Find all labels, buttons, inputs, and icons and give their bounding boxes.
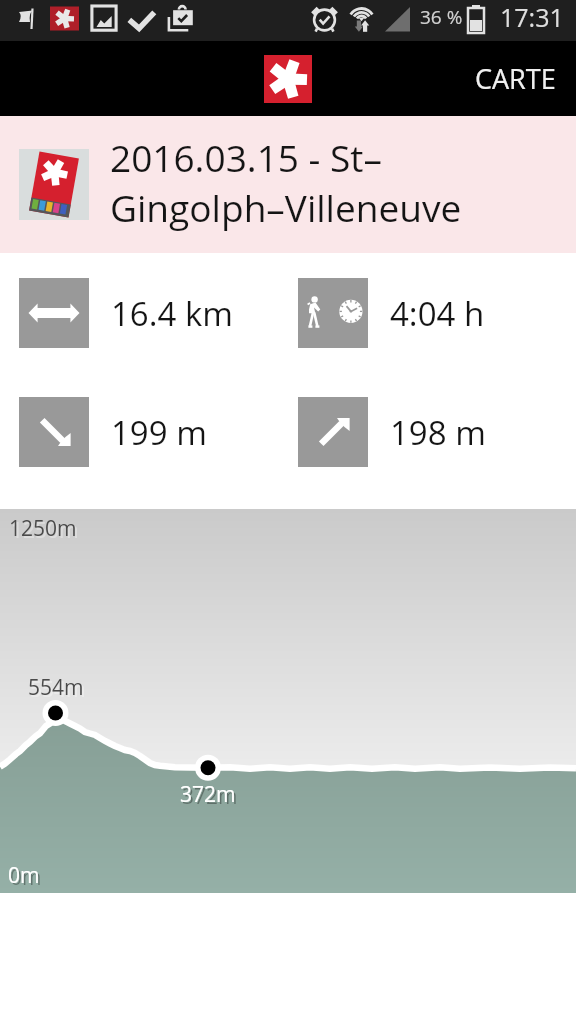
staticText: 1250m xyxy=(9,514,77,543)
staticText: 36 % xyxy=(420,4,463,30)
button[interactable]: 198 m xyxy=(298,397,557,467)
button[interactable]: 199 m xyxy=(19,397,278,467)
button[interactable]: CARTE xyxy=(455,44,576,113)
button[interactable]: 4:04 h xyxy=(298,278,557,348)
staticText: CARTE xyxy=(475,60,556,97)
staticText: 198 m xyxy=(390,410,486,455)
staticText: 16.4 km xyxy=(111,291,233,336)
staticText: 2016.03.15 - St– xyxy=(110,132,382,182)
staticText: 372m xyxy=(182,782,238,811)
staticText: 372m xyxy=(180,780,236,809)
staticText: 0m xyxy=(10,863,42,892)
staticText: 0m xyxy=(8,861,40,890)
staticText: 17:31 xyxy=(500,0,564,34)
staticText: Gingolph–Villeneuve xyxy=(110,182,462,232)
staticText: 199 m xyxy=(111,410,207,455)
staticText: 4:04 h xyxy=(390,291,485,336)
staticText: 554m xyxy=(30,675,86,704)
staticText: 554m xyxy=(28,673,84,702)
button[interactable]: Logo xyxy=(264,55,312,103)
button[interactable]: 2016.03.15 - St– xyxy=(0,116,576,253)
staticText: 1250m xyxy=(11,516,79,545)
button[interactable]: 16.4 km xyxy=(19,278,278,348)
